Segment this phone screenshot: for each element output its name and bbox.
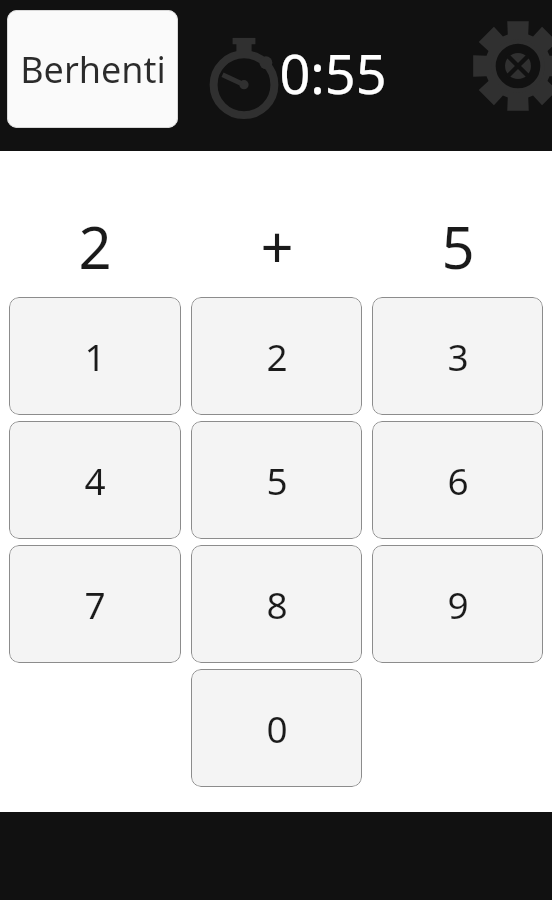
staticText: 6 bbox=[447, 455, 469, 505]
staticText: 0 bbox=[266, 703, 288, 753]
button[interactable]: 5 bbox=[191, 421, 362, 539]
staticText: 5 bbox=[441, 207, 475, 277]
button[interactable]: Settings bbox=[470, 18, 552, 114]
staticText: 5 bbox=[266, 455, 288, 505]
button[interactable]: 3 bbox=[372, 297, 543, 415]
button[interactable]: 1 bbox=[9, 297, 181, 415]
staticText: Berhenti bbox=[20, 45, 166, 94]
staticText: 2 bbox=[78, 207, 112, 277]
staticText: 1 bbox=[84, 331, 106, 381]
button[interactable]: 2 bbox=[191, 297, 362, 415]
other: Timer bbox=[206, 36, 282, 120]
button[interactable]: 9 bbox=[372, 545, 543, 663]
button[interactable]: 6 bbox=[372, 421, 543, 539]
button[interactable]: Berhenti bbox=[7, 10, 178, 128]
staticText: 3 bbox=[447, 331, 469, 381]
button[interactable]: 8 bbox=[191, 545, 362, 663]
staticText: 0:55 bbox=[279, 36, 387, 108]
staticText: + bbox=[260, 207, 294, 277]
button[interactable]: 4 bbox=[9, 421, 181, 539]
button[interactable]: 0 bbox=[191, 669, 362, 787]
staticText: 2 bbox=[266, 331, 288, 381]
button[interactable]: 7 bbox=[9, 545, 181, 663]
staticText: 4 bbox=[84, 455, 106, 505]
staticText: 8 bbox=[266, 579, 288, 629]
staticText: 7 bbox=[84, 579, 106, 629]
staticText: 9 bbox=[447, 579, 469, 629]
